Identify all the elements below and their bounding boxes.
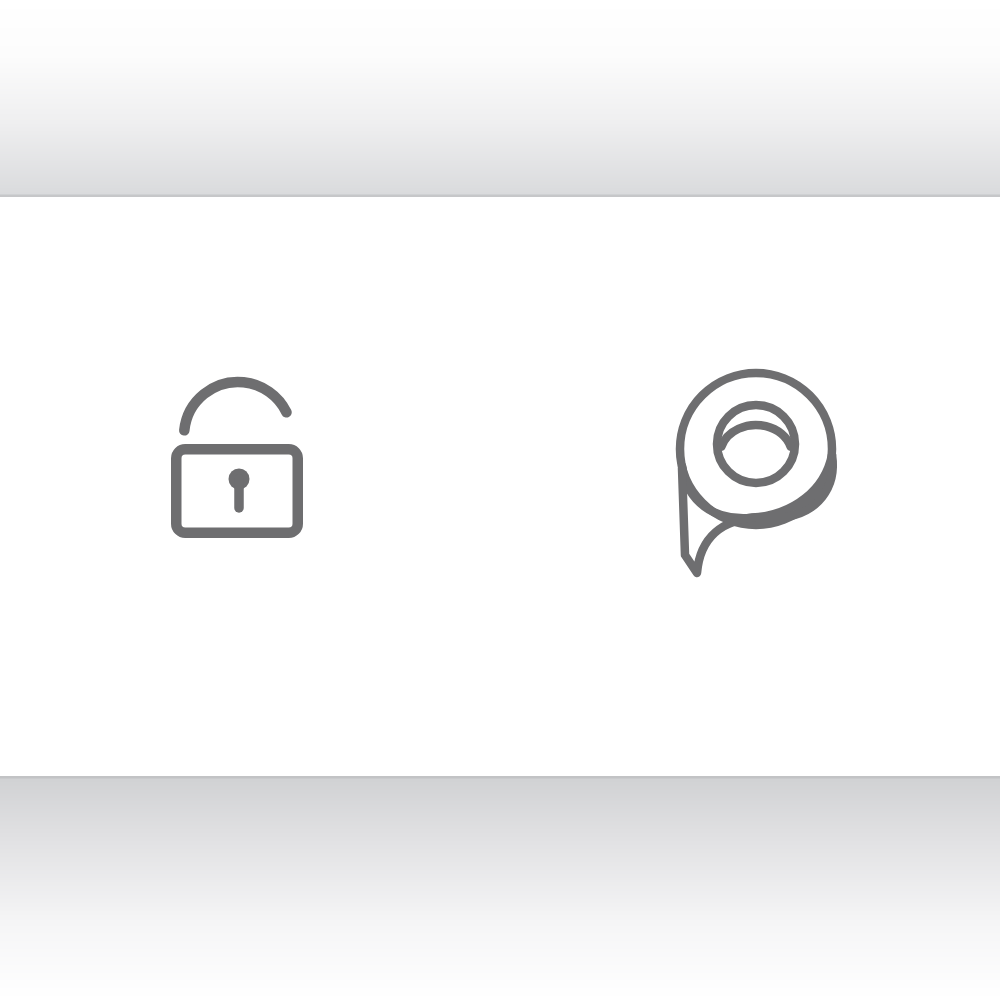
- button[interactable]: Unlock: [152, 358, 324, 554]
- button[interactable]: Tape: [666, 360, 852, 588]
